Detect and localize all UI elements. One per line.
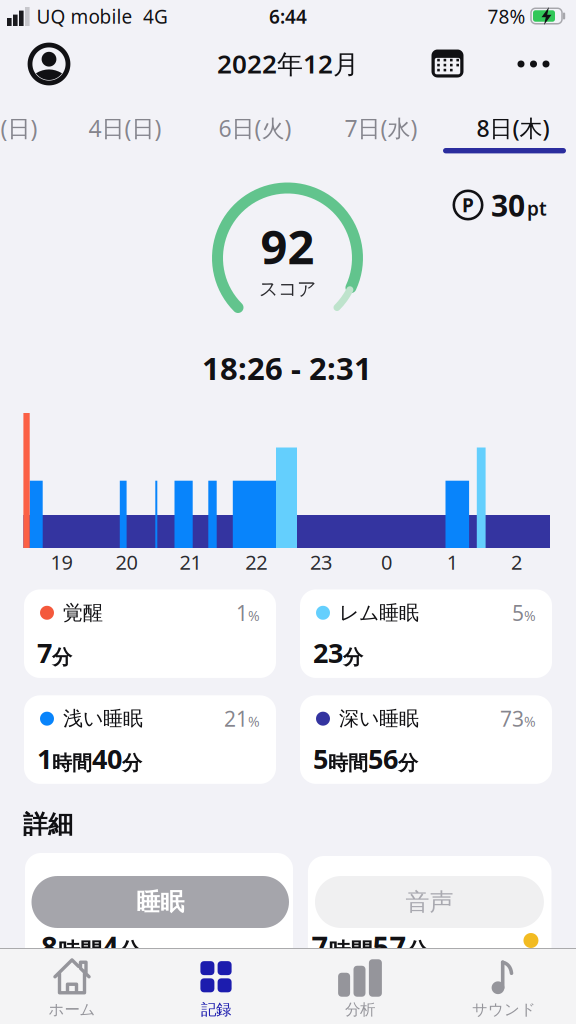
button[interactable]: 音声 xyxy=(308,856,551,968)
staticText: 6日(火) xyxy=(218,112,291,144)
staticText: 20 xyxy=(116,548,138,576)
staticText: 2 xyxy=(511,548,522,576)
staticText: 8日(木) xyxy=(476,112,549,144)
staticText: 睡眠 xyxy=(136,887,184,917)
staticText: 73% xyxy=(500,705,536,733)
button[interactable]: その他 xyxy=(512,49,554,79)
staticText: 8時間4分 xyxy=(41,927,141,966)
staticText: 詳細 xyxy=(23,809,73,840)
staticText: 覚醒 xyxy=(63,600,103,625)
staticText: 1時間40分 xyxy=(37,741,142,776)
button[interactable]: 睡眠 xyxy=(25,853,293,965)
button[interactable]: プロフィール xyxy=(29,44,69,84)
staticText: 7時間57分 xyxy=(311,927,428,966)
button[interactable]: 深い睡眠 xyxy=(300,695,552,784)
button[interactable]: 浅い睡眠 xyxy=(24,695,276,784)
button[interactable]: 分析 xyxy=(288,953,432,1023)
staticText: 1% xyxy=(236,599,260,627)
button[interactable]: レム睡眠 xyxy=(300,589,552,678)
staticText: 19 xyxy=(50,548,72,576)
staticText: 5時間56分 xyxy=(313,741,418,776)
staticText: 21 xyxy=(179,548,201,576)
staticText: 音声 xyxy=(405,887,453,917)
staticText: 深い睡眠 xyxy=(339,706,419,731)
staticText: 22 xyxy=(245,548,267,576)
button[interactable]: 4日(日) xyxy=(88,112,161,144)
button[interactable]: カレンダー xyxy=(429,47,465,79)
staticText: 4G xyxy=(143,4,168,29)
button[interactable]: ホーム xyxy=(0,953,144,1023)
staticText: UQ mobile xyxy=(36,4,132,29)
staticText: サウンド xyxy=(472,1000,536,1019)
staticText: 18:26 - 2:31 xyxy=(202,347,372,389)
staticText: 1 xyxy=(447,548,458,576)
staticText: (日) xyxy=(0,112,37,144)
staticText: P xyxy=(462,192,474,218)
staticText: 30 xyxy=(491,185,525,225)
staticText: スコア xyxy=(259,277,316,301)
staticText: 6:44 xyxy=(269,4,307,29)
staticText: 分析 xyxy=(345,1000,375,1019)
staticText: 0 xyxy=(381,548,392,576)
staticText: 7分 xyxy=(37,635,72,671)
button[interactable]: (日) xyxy=(0,112,37,144)
button[interactable]: 7日(水) xyxy=(344,112,417,144)
staticText: 23 xyxy=(310,548,332,576)
staticText: 5% xyxy=(512,599,536,627)
staticText: 7日(水) xyxy=(344,112,417,144)
button[interactable]: サウンド xyxy=(432,953,576,1023)
button[interactable]: 記録 xyxy=(144,953,288,1023)
button[interactable]: 8日(木) xyxy=(476,112,549,144)
button[interactable]: 6日(火) xyxy=(218,112,291,144)
staticText: 浅い睡眠 xyxy=(63,706,143,731)
staticText: 23分 xyxy=(313,635,363,671)
staticText: 92 xyxy=(260,214,314,278)
staticText: ホーム xyxy=(48,1000,95,1019)
staticText: 2022年12月 xyxy=(217,46,359,81)
staticText: レム睡眠 xyxy=(339,600,419,625)
staticText: pt xyxy=(527,196,547,221)
staticText: 記録 xyxy=(201,1000,231,1019)
button[interactable]: 覚醒 xyxy=(24,589,276,678)
staticText: 4日(日) xyxy=(88,112,161,144)
staticText: 21% xyxy=(224,705,260,733)
staticText: 78% xyxy=(487,4,525,29)
